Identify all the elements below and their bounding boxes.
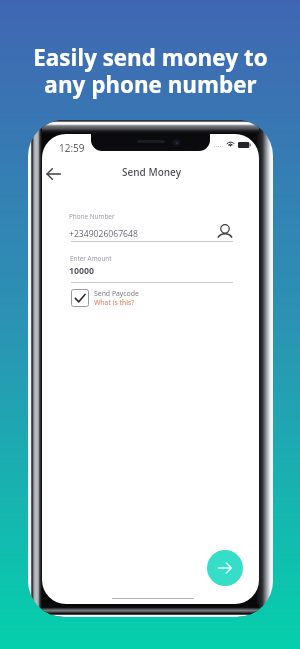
staticText: 12:59 bbox=[59, 141, 85, 155]
staticText: Phone Number bbox=[69, 212, 115, 221]
staticText: Easily send money to any phone number bbox=[33, 42, 268, 99]
button[interactable]: Back bbox=[43, 163, 65, 185]
staticText: Enter Amount bbox=[70, 254, 112, 263]
staticText: +2349026067648 bbox=[69, 228, 138, 240]
staticText: Send Money bbox=[122, 165, 182, 179]
staticText: 10000 bbox=[69, 265, 95, 277]
staticText: What is this? bbox=[94, 298, 135, 307]
button[interactable]: Continue bbox=[207, 550, 243, 586]
button[interactable]: Send Paycode bbox=[71, 289, 139, 307]
button[interactable]: Send Paycode bbox=[71, 289, 89, 307]
staticText: Send Paycode bbox=[94, 289, 139, 298]
